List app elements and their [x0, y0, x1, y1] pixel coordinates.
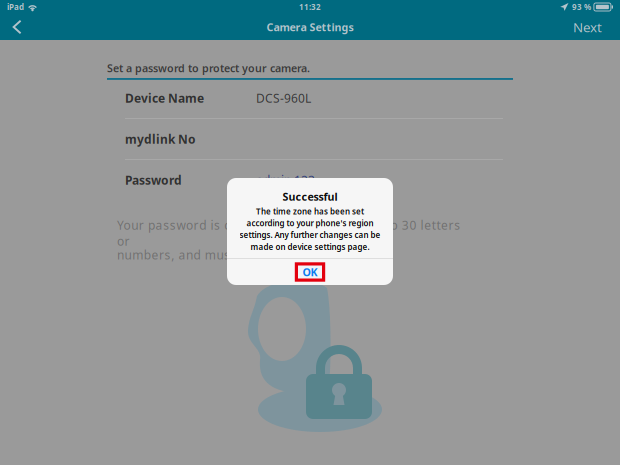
staticText: Successful: [282, 189, 337, 204]
staticText: settings. Any further changes can be: [239, 230, 380, 240]
staticText: 93 %: [572, 2, 591, 12]
staticText: mydlink No: [125, 131, 196, 147]
staticText: OK: [302, 265, 317, 279]
staticText: Device Name: [125, 90, 204, 106]
staticText: made on device settings page.: [250, 241, 369, 252]
button[interactable]: OK: [227, 259, 393, 285]
staticText: numbers, and must not contain spaces.: [117, 247, 357, 263]
staticText: DCS-960L: [256, 90, 311, 106]
staticText: Set a password to protect your camera.: [107, 61, 310, 75]
staticText: according to your phone's region: [246, 218, 373, 228]
button[interactable]: Back: [0, 14, 34, 40]
staticText: admin 123: [256, 172, 315, 188]
staticText: iPad: [7, 2, 24, 12]
button[interactable]: Next: [555, 14, 620, 40]
staticText: Password: [125, 172, 182, 188]
staticText: The time zone has been set: [256, 206, 364, 217]
staticText: Camera Settings: [266, 20, 353, 34]
staticText: Next: [573, 18, 602, 36]
staticText: 11:32: [299, 2, 321, 12]
staticText: Your password is case sensitive. It can …: [117, 217, 460, 249]
